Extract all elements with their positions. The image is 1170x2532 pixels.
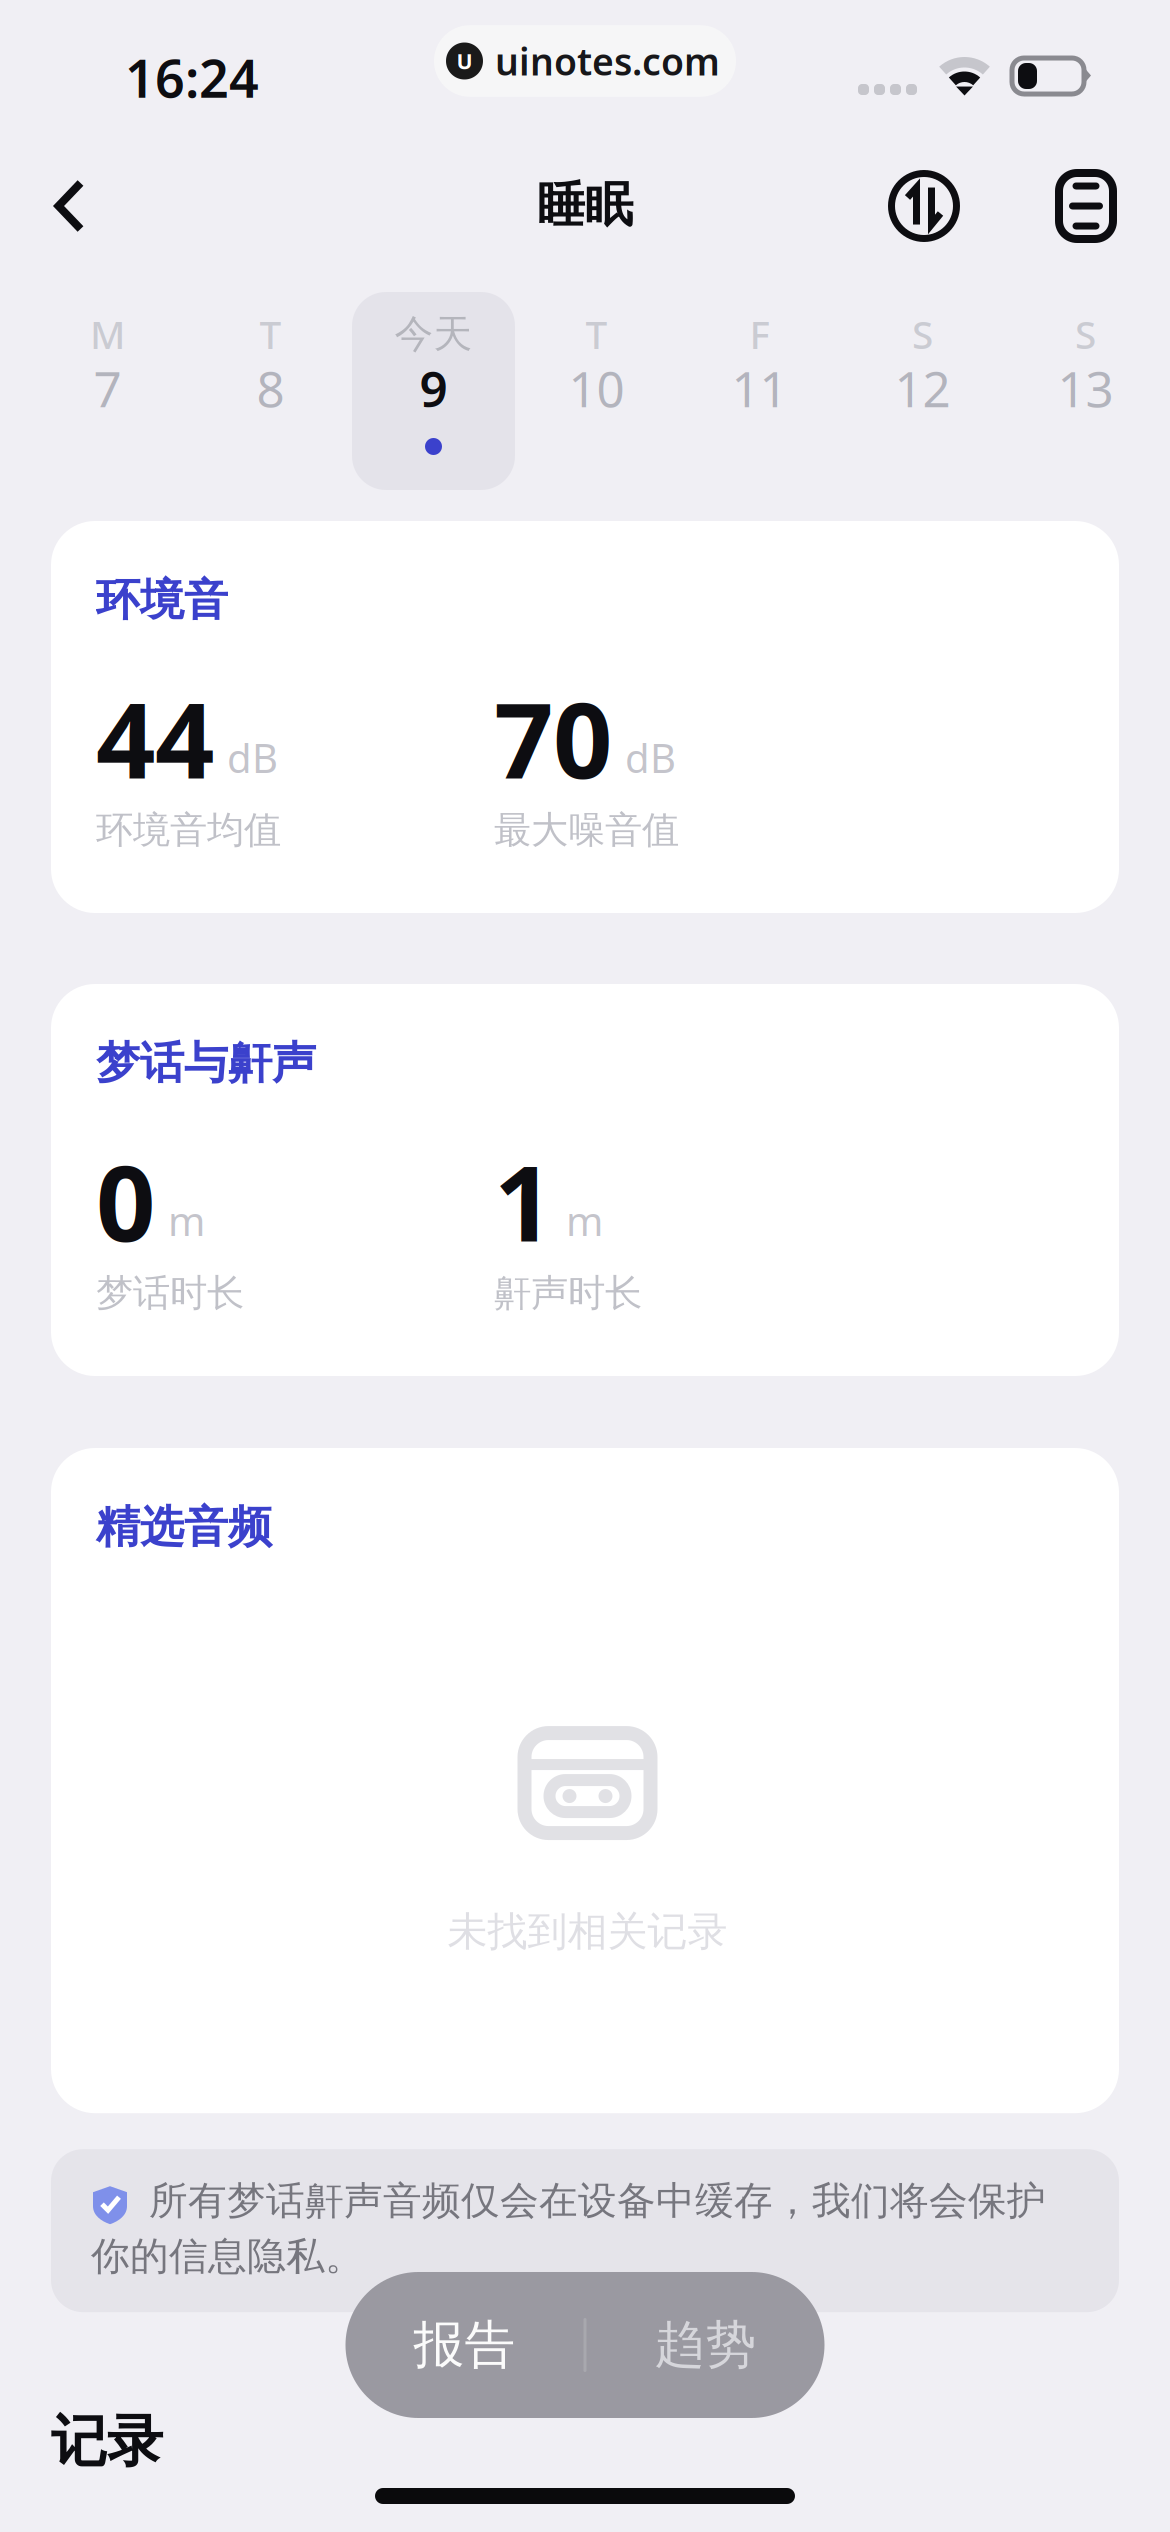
staticText: 16:24 [125,43,259,112]
button[interactable]: 今天 [352,292,515,490]
staticText: m [566,1194,603,1247]
button[interactable]: 排序 [822,144,1026,268]
staticText: S [912,308,933,360]
staticText: 70 [494,669,612,807]
staticText: 梦话时长 [96,1270,244,1316]
staticText: dB [625,731,676,784]
staticText: 0 [96,1132,155,1270]
staticText: dB [227,731,278,784]
button[interactable]: T [189,292,352,490]
staticText: M [90,308,125,360]
staticText: 10 [568,355,624,421]
staticText: T [585,308,607,360]
staticText: 11 [731,355,787,421]
staticText: 报告 [413,2314,515,2376]
staticText: U [456,47,472,75]
staticText: 今天 [394,310,472,358]
button[interactable]: S [1004,292,1167,490]
staticText: uinotes.com [495,36,720,86]
staticText: 睡眠 [537,175,633,234]
staticText: 环境音 [96,573,228,627]
staticText: 记录 [51,2407,163,2476]
staticText: F [749,308,769,360]
button[interactable]: S [841,292,1004,490]
staticText: 7 [93,355,121,421]
staticText: 1 [494,1132,553,1270]
staticText: 9 [419,355,447,421]
button[interactable]: 返回 [18,144,122,268]
staticText: 趋势 [654,2314,756,2376]
button[interactable]: M [26,292,189,490]
staticText: 精选音频 [96,1500,272,1554]
staticText: 未找到相关记录 [447,1907,727,1956]
button[interactable]: 记录列表 [1026,144,1146,268]
staticText: m [168,1194,205,1247]
staticText: 44 [96,669,214,807]
staticText: T [259,308,281,360]
staticText: S [1075,308,1096,360]
button[interactable]: 趋势 [586,2272,824,2418]
staticText: 最大噪音值 [494,807,679,853]
staticText: 鼾声时长 [494,1270,642,1316]
button[interactable]: 报告 [345,2272,583,2418]
staticText: 13 [1057,355,1113,421]
staticText: 所有梦话鼾声音频仅会在设备中缓存，我们将会保护你的信息隐私。 [91,2177,1046,2280]
staticText: 环境音均值 [96,807,281,853]
button[interactable]: T [515,292,678,490]
staticText: 梦话与鼾声 [96,1036,316,1090]
staticText: 8 [256,355,284,421]
button[interactable]: F [678,292,841,490]
staticText: 12 [894,355,950,421]
